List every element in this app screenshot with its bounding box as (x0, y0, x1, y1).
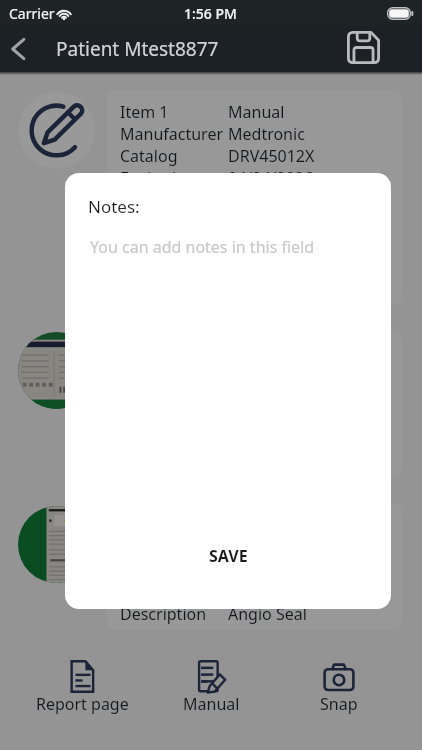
staticText: Manufacturer (120, 537, 228, 559)
staticText: Carrier (9, 4, 55, 23)
staticText: Manufacturer (120, 123, 228, 145)
button[interactable]: Edit item (18, 92, 107, 169)
staticText: Patient Mtest8877 (56, 36, 219, 62)
staticText: Catalog (120, 559, 228, 581)
button[interactable]: SAVE (87, 545, 369, 567)
staticText: Terumo (228, 537, 286, 559)
staticText: TR10442 (228, 559, 293, 581)
staticText: Notes: (88, 195, 140, 218)
staticText: Expiration (120, 167, 228, 189)
staticText: 8811-22 (228, 233, 289, 255)
staticText: Medtronic (228, 123, 305, 145)
staticText: Description (120, 603, 228, 625)
staticText: UDI (120, 211, 228, 233)
staticText: Manual (183, 693, 240, 715)
staticText: Item 1 (120, 101, 228, 123)
button[interactable]: Snap (275, 631, 403, 715)
button[interactable]: Photo (18, 332, 107, 409)
button[interactable]: Back (0, 26, 36, 72)
staticText: Manual (228, 101, 285, 123)
staticText: SAVE (209, 545, 248, 567)
staticText: Lot (120, 189, 228, 211)
button[interactable]: Report page (18, 631, 147, 715)
staticText: 1:56 PM (184, 4, 237, 23)
button[interactable]: Save (340, 26, 386, 69)
staticText: Reference (120, 233, 228, 255)
staticText: Report page (36, 693, 129, 715)
staticText: Catalog (120, 145, 228, 167)
staticText: DRV45012X (228, 145, 315, 167)
staticText: Snap (320, 693, 358, 715)
staticText: Angio Seal (228, 603, 307, 625)
button[interactable]: Photo (18, 506, 107, 583)
button[interactable]: Manual (147, 631, 275, 715)
staticText: You can add notes in this field (90, 236, 315, 258)
staticText: 04/24/2026 (228, 167, 314, 189)
